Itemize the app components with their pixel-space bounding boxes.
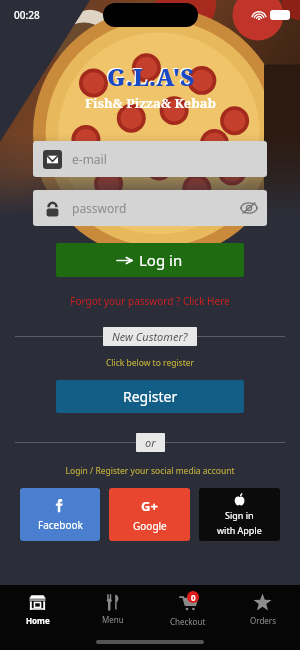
staticText: G.L.A'S [107, 61, 195, 92]
staticText: Register [123, 387, 178, 406]
staticText: G.L.A'S [106, 60, 194, 91]
staticText: 00:28 [14, 8, 40, 22]
staticText: password [72, 200, 127, 216]
button[interactable]: Orders [225, 585, 300, 633]
staticText: Fish& Pizza& Kebab [85, 94, 216, 112]
staticText: Checkout [170, 616, 206, 627]
staticText: Home [26, 615, 50, 626]
staticText: with Apple [217, 524, 262, 536]
button[interactable]: password [33, 190, 267, 226]
button[interactable]: e-mail [33, 141, 267, 177]
staticText: Google [133, 519, 167, 533]
staticText: Click below to register [0, 357, 300, 369]
button[interactable]: Facebook [20, 488, 100, 541]
staticText: Sign in [225, 509, 254, 521]
staticText: Login / Register your social media accou… [0, 465, 300, 477]
staticText: G+ [141, 497, 158, 515]
staticText: Menu [102, 614, 124, 625]
other: Show password [241, 200, 257, 216]
staticText: e-mail [72, 151, 107, 167]
button[interactable]: G+ [109, 488, 190, 541]
staticText: Orders [250, 615, 276, 626]
staticText: or [145, 435, 156, 450]
button[interactable]: Home [0, 585, 75, 633]
button[interactable]: Forgot your password ? Click Here [0, 292, 300, 310]
staticText: Log in [139, 250, 183, 270]
button[interactable]: Register [56, 380, 244, 413]
button[interactable]: Menu [75, 585, 150, 633]
button[interactable]: 0 [150, 585, 225, 633]
staticText: Facebook [38, 518, 83, 532]
staticText: New Customer? [112, 329, 188, 344]
button[interactable]: Sign in [199, 488, 280, 541]
button[interactable]: Log in [56, 243, 244, 277]
staticText: 0 [191, 592, 196, 603]
